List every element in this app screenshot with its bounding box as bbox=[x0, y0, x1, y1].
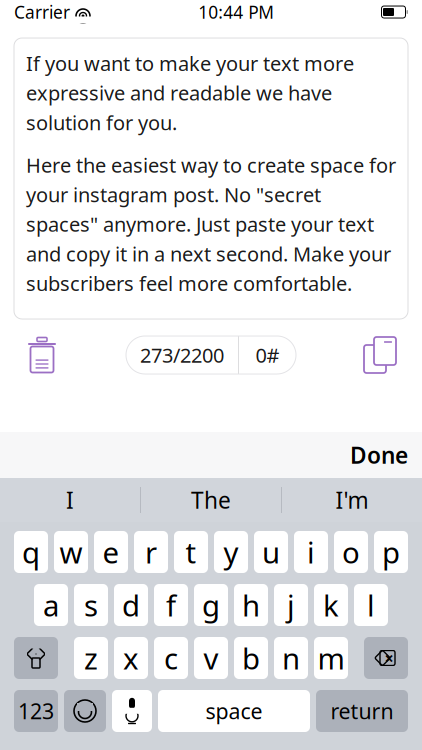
button[interactable]: Shift bbox=[14, 637, 58, 679]
staticText: 0# bbox=[255, 342, 279, 368]
staticText: The bbox=[191, 485, 231, 515]
button[interactable]: I bbox=[0, 478, 140, 522]
staticText: o bbox=[342, 532, 360, 571]
staticText: n bbox=[282, 638, 300, 677]
button[interactable]: r bbox=[134, 531, 168, 573]
button[interactable]: a bbox=[34, 584, 68, 626]
staticText: s bbox=[84, 585, 98, 624]
staticText: q bbox=[22, 532, 40, 571]
staticText: 273/2200 bbox=[140, 342, 224, 368]
button[interactable]: Done bbox=[336, 438, 422, 472]
button[interactable]: n bbox=[274, 637, 308, 679]
button[interactable]: p bbox=[374, 531, 408, 573]
button[interactable]: x bbox=[114, 637, 148, 679]
staticText: u bbox=[262, 532, 280, 571]
staticText: Done bbox=[350, 440, 408, 470]
button[interactable]: h bbox=[234, 584, 268, 626]
button[interactable]: k bbox=[314, 584, 348, 626]
button[interactable]: c bbox=[154, 637, 188, 679]
button[interactable]: t bbox=[174, 531, 208, 573]
button[interactable]: w bbox=[54, 531, 88, 573]
button[interactable]: 123 bbox=[14, 690, 58, 732]
staticText: d bbox=[122, 585, 140, 624]
button[interactable]: l bbox=[354, 584, 388, 626]
staticText: t bbox=[185, 532, 196, 571]
button[interactable]: space bbox=[158, 690, 310, 732]
button[interactable]: m bbox=[314, 637, 348, 679]
staticText: k bbox=[323, 585, 339, 624]
staticText: If you want to make your text more expre… bbox=[26, 50, 354, 136]
staticText: a bbox=[43, 585, 59, 624]
button[interactable]: o bbox=[334, 531, 368, 573]
staticText: j bbox=[287, 585, 295, 624]
staticText: e bbox=[102, 532, 119, 571]
button[interactable]: u bbox=[254, 531, 288, 573]
staticText: v bbox=[203, 638, 218, 677]
staticText: return bbox=[330, 697, 393, 725]
button[interactable]: i bbox=[294, 531, 328, 573]
button[interactable]: e bbox=[94, 531, 128, 573]
staticText: x bbox=[123, 638, 139, 677]
button[interactable]: Copy text bbox=[352, 329, 408, 381]
button[interactable]: d bbox=[114, 584, 148, 626]
staticText: c bbox=[164, 638, 178, 677]
button[interactable]: j bbox=[274, 584, 308, 626]
button[interactable]: v bbox=[194, 637, 228, 679]
button[interactable]: return bbox=[316, 690, 408, 732]
staticText: Here the easiest way to create space for… bbox=[26, 152, 396, 296]
staticText: I'm bbox=[335, 485, 368, 515]
staticText: z bbox=[84, 638, 98, 677]
button[interactable]: Delete bbox=[364, 637, 408, 679]
button[interactable]: f bbox=[154, 584, 188, 626]
button[interactable]: g bbox=[194, 584, 228, 626]
staticText: i bbox=[307, 532, 315, 571]
button[interactable]: b bbox=[234, 637, 268, 679]
button[interactable]: s bbox=[74, 584, 108, 626]
staticText: w bbox=[59, 532, 82, 571]
button[interactable]: Emoji bbox=[64, 690, 106, 732]
staticText: r bbox=[145, 532, 157, 571]
staticText: b bbox=[242, 638, 260, 677]
button[interactable]: Clear text bbox=[14, 329, 70, 381]
staticText: m bbox=[317, 638, 344, 677]
staticText: y bbox=[223, 532, 238, 571]
staticText: f bbox=[166, 585, 176, 624]
button[interactable]: I'm bbox=[282, 478, 422, 522]
button[interactable]: The bbox=[141, 478, 281, 522]
staticText: g bbox=[202, 585, 220, 624]
staticText: 123 bbox=[18, 697, 54, 725]
staticText: space bbox=[205, 697, 262, 725]
staticText: h bbox=[242, 585, 260, 624]
staticText: × bbox=[384, 647, 393, 669]
staticText: l bbox=[367, 585, 375, 624]
staticText: Carrier bbox=[14, 0, 70, 23]
button[interactable]: 273/2200 bbox=[126, 336, 296, 374]
button[interactable]: y bbox=[214, 531, 248, 573]
button[interactable]: q bbox=[14, 531, 48, 573]
staticText: p bbox=[382, 532, 400, 571]
staticText: 10:44 PM bbox=[198, 0, 274, 23]
button[interactable]: z bbox=[74, 637, 108, 679]
staticText: I bbox=[66, 485, 74, 515]
button[interactable]: Dictation bbox=[112, 690, 152, 732]
